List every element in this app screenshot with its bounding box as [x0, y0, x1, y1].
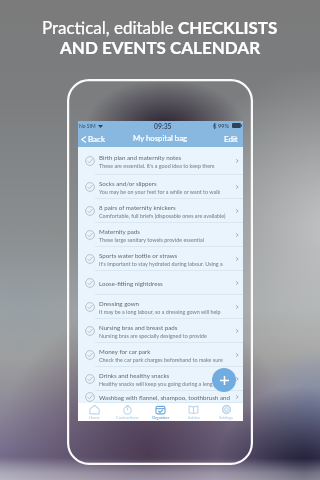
staticText: 8 pairs of maternity knickers: [99, 204, 176, 211]
button[interactable]: Settings: [210, 403, 243, 421]
button[interactable]: Nursing bras and breast pads: [78, 319, 243, 343]
staticText: Comfortable, full briefs (disposable one…: [99, 213, 226, 219]
staticText: Nursing bras are specially designed to p…: [99, 333, 207, 339]
staticText: These are essential. It's a good idea to…: [99, 163, 215, 169]
staticText: 99%: [218, 122, 230, 129]
staticText: No SIM: [79, 123, 96, 129]
staticText: Back: [88, 134, 105, 144]
button[interactable]: Maternity pads: [78, 223, 243, 247]
staticText: You may be on your feet for a while or w…: [99, 189, 221, 195]
staticText: Nursing bras and breast pads: [99, 324, 178, 331]
staticText: Money for car park: [99, 348, 151, 355]
staticText: Maternity pads: [99, 228, 140, 235]
button[interactable]: Add item: [212, 368, 236, 392]
staticText: Check the car park charges beforehand to…: [99, 357, 223, 363]
button[interactable]: Socks and/or slippers: [78, 175, 243, 199]
staticText: Socks and/or slippers: [99, 180, 157, 187]
button[interactable]: Edit: [223, 134, 239, 144]
button[interactable]: 8 pairs of maternity knickers: [78, 199, 243, 223]
staticText: It's important to stay hydrated during l…: [99, 261, 223, 267]
button[interactable]: Dressing gown: [78, 295, 243, 319]
staticText: Loose-fitting nightdress: [99, 280, 163, 287]
staticText: AND EVENTS CALENDAR: [60, 37, 261, 57]
staticText: Contractions: [116, 415, 139, 420]
button[interactable]: Advice: [177, 403, 210, 421]
staticText: Organiser: [152, 415, 170, 420]
staticText: Washbag with flannel, shampoo, toothbrus…: [99, 394, 230, 401]
staticText: Advice: [188, 415, 200, 420]
button[interactable]: Drinks and healthy snacks: [78, 367, 243, 391]
staticText: Settings: [219, 415, 234, 420]
staticText: My hospital bag: [133, 133, 188, 142]
button[interactable]: Washbag with flannel, shampoo, toothbrus…: [78, 391, 243, 403]
staticText: Birth plan and maternity notes: [99, 154, 182, 161]
button[interactable]: Sports water bottle or straws: [78, 247, 243, 271]
staticText: Home: [89, 415, 100, 420]
button[interactable]: Organiser: [144, 403, 177, 421]
staticText: These large sanitary towels provide esse…: [99, 237, 205, 243]
button[interactable]: Birth plan and maternity notes: [78, 147, 243, 175]
staticText: Sports water bottle or straws: [99, 252, 178, 259]
button[interactable]: Contractions: [111, 403, 144, 421]
button[interactable]: Money for car park: [78, 343, 243, 367]
staticText: 09:35: [154, 122, 172, 130]
button[interactable]: Home: [78, 403, 111, 421]
staticText: It may be a long labour, so a dressing g…: [99, 309, 221, 315]
staticText: Practical, editable CHECKLISTS: [42, 17, 278, 37]
button[interactable]: Back: [80, 134, 106, 144]
staticText: Drinks and healthy snacks: [99, 372, 170, 379]
staticText: Dressing gown: [99, 300, 140, 307]
button[interactable]: Loose-fitting nightdress: [78, 271, 243, 295]
staticText: Healthy snacks will keep you going durin…: [99, 381, 213, 387]
